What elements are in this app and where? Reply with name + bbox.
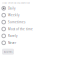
staticText: Most of the time	[8, 27, 33, 31]
staticText: Weekly	[8, 13, 19, 17]
button[interactable]: Never	[0, 39, 64, 46]
button[interactable]: Sometimes	[0, 19, 64, 26]
staticText: Daily	[8, 6, 15, 10]
staticText: Rarely	[8, 34, 17, 38]
staticText: Submit	[3, 50, 12, 53]
button[interactable]: Weekly	[0, 12, 64, 19]
button[interactable]: Daily	[0, 5, 64, 12]
staticText: How often do you exercise?	[2, 1, 30, 4]
button[interactable]: Most of the time	[0, 26, 64, 32]
button[interactable]: Rarely	[0, 32, 64, 39]
button[interactable]: Submit	[2, 49, 14, 55]
staticText: Never	[8, 41, 16, 45]
staticText: Sometimes	[8, 20, 25, 24]
